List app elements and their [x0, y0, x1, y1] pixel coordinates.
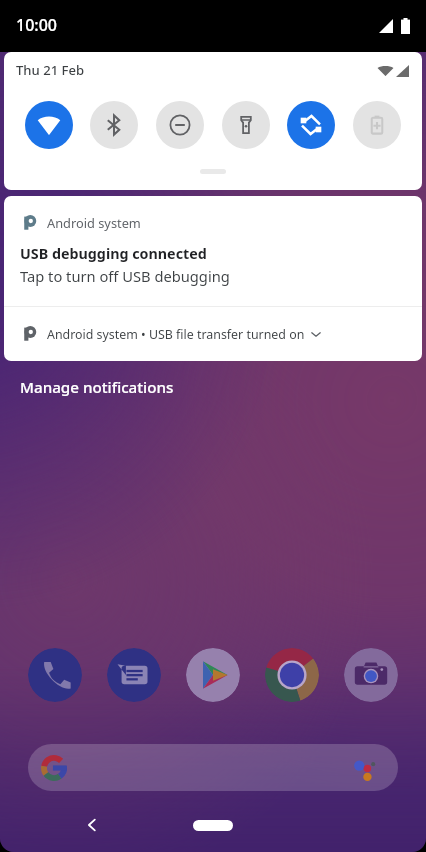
- button[interactable]: Android system • USB file transfer turne…: [4, 307, 422, 361]
- button[interactable]: Home: [193, 820, 233, 831]
- button[interactable]: Quick setting: [353, 101, 401, 149]
- button[interactable]: Quick setting: [90, 101, 138, 149]
- staticText: USB debugging connected: [20, 244, 207, 263]
- button[interactable]: Back: [85, 818, 99, 832]
- staticText: Manage notifications: [20, 377, 174, 398]
- button[interactable]: Phone: [28, 648, 82, 702]
- button[interactable]: [4, 196, 422, 306]
- button[interactable]: Camera: [344, 648, 398, 702]
- button[interactable]: Search: [28, 744, 398, 791]
- staticText: Thu 21 Feb: [16, 61, 85, 79]
- button[interactable]: Messages: [107, 648, 161, 702]
- button[interactable]: Quick setting: [222, 101, 270, 149]
- button[interactable]: Quick setting: [287, 101, 335, 149]
- button[interactable]: Quick setting: [25, 101, 73, 149]
- button[interactable]: Play Store: [186, 648, 240, 702]
- staticText: Android system • USB file transfer turne…: [47, 326, 305, 343]
- staticText: Android system: [47, 214, 141, 231]
- staticText: 10:00: [16, 14, 57, 36]
- staticText: Tap to turn off USB debugging: [20, 266, 230, 286]
- button[interactable]: Quick setting: [156, 101, 204, 149]
- button[interactable]: Manage notifications: [20, 377, 174, 398]
- button[interactable]: Chrome: [265, 648, 319, 702]
